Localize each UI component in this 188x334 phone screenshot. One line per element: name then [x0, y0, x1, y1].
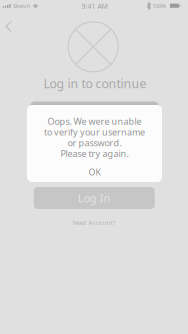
- button[interactable]: Need Account?: [66, 214, 121, 230]
- staticText: Need Account?: [72, 218, 115, 226]
- button[interactable]: Log In: [34, 187, 155, 209]
- staticText: Sketch: [13, 2, 30, 10]
- staticText: Log In: [78, 191, 111, 205]
- staticText: to verify your username: [44, 126, 145, 138]
- staticText: 100%: [152, 2, 166, 10]
- staticText: Please try again.: [60, 147, 128, 159]
- staticText: OK: [88, 166, 100, 178]
- staticText: 9:41 AM: [81, 1, 107, 11]
- button[interactable]: OK: [27, 162, 162, 182]
- staticText: Oops. We were unable: [47, 115, 141, 127]
- button[interactable]: Back: [0, 12, 20, 40]
- staticText: or password.: [67, 136, 121, 149]
- staticText: Log in to continue: [43, 75, 146, 92]
